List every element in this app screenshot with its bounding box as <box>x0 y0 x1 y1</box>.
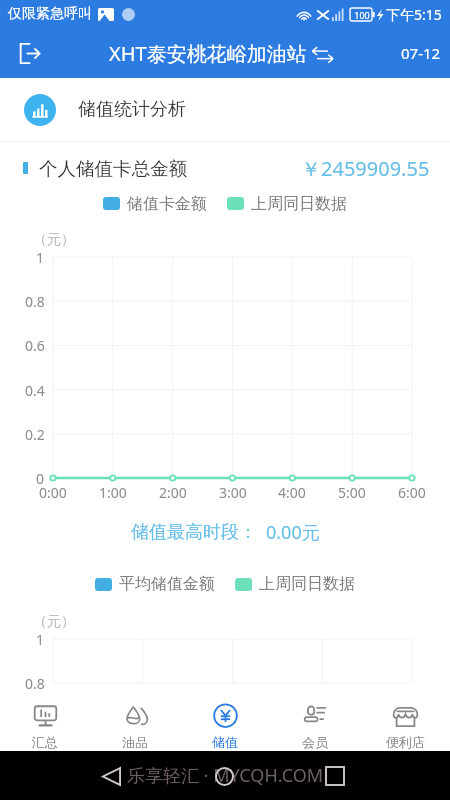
button[interactable]: 主页 <box>205 757 243 795</box>
staticText: 仅限紧急呼叫 <box>8 5 92 23</box>
staticText: 0.00元 <box>266 520 320 545</box>
button[interactable]: 会员 <box>270 693 360 751</box>
button[interactable]: 便利店 <box>360 693 450 751</box>
staticText: 3:00 <box>219 483 247 502</box>
button[interactable]: 储值 <box>180 693 270 751</box>
staticText: 0.6 <box>25 336 45 355</box>
staticText: 储值卡金额 <box>127 194 207 213</box>
staticText: 6:00 <box>398 483 426 502</box>
button[interactable]: 个人储值卡总金额 <box>23 142 430 194</box>
button[interactable]: 汇总 <box>0 693 90 751</box>
staticText: （元） <box>33 613 75 631</box>
staticText: 0.2 <box>25 425 45 444</box>
staticText: 0.4 <box>25 381 45 400</box>
staticText: 便利店 <box>386 734 425 750</box>
staticText: 乐享轻汇 · MYCQH.COM <box>127 763 324 788</box>
staticText: 储值 <box>212 734 238 750</box>
staticText: 会员 <box>302 734 328 750</box>
staticText: 上周同日数据 <box>251 194 347 213</box>
staticText: 5:00 <box>338 483 366 502</box>
staticText: 储值最高时段： <box>131 521 257 544</box>
staticText: 07-12 <box>401 43 441 63</box>
button[interactable]: 最近任务 <box>316 757 354 795</box>
staticText: 油品 <box>122 734 148 750</box>
staticText: 汇总 <box>32 734 58 750</box>
staticText: 1 <box>36 248 45 267</box>
staticText: 1 <box>36 630 45 649</box>
staticText: 储值统计分析 <box>78 98 186 121</box>
button[interactable]: 油品 <box>90 693 180 751</box>
button[interactable]: 返回 <box>92 757 130 795</box>
staticText: 0:00 <box>39 483 67 502</box>
staticText: 上周同日数据 <box>259 574 355 594</box>
staticText: 100 <box>354 9 370 21</box>
staticText: 平均储值金额 <box>119 574 215 594</box>
staticText: 0.8 <box>25 674 45 693</box>
staticText: 下午5:15 <box>386 5 442 24</box>
button[interactable]: 退出登录 <box>9 34 47 72</box>
staticText: 1:00 <box>99 483 127 502</box>
staticText: 4:00 <box>278 483 306 502</box>
staticText: 2:00 <box>159 483 187 502</box>
staticText: （元） <box>33 231 75 249</box>
staticText: XHT泰安桃花峪加油站 <box>109 40 307 67</box>
staticText: 0 <box>36 469 45 488</box>
button[interactable]: 切换油站 <box>309 41 335 67</box>
button[interactable]: 储值统计分析 <box>24 78 450 141</box>
staticText: 个人储值卡总金额 <box>39 157 187 180</box>
staticText: ￥2459909.55 <box>301 155 430 182</box>
staticText: 0.8 <box>25 292 45 311</box>
